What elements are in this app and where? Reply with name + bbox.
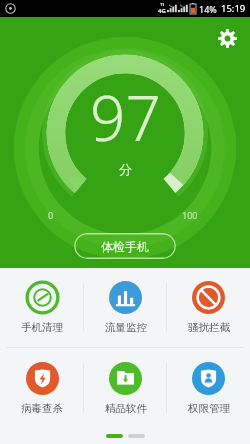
staticText: 分 — [119, 161, 132, 177]
button[interactable]: 流量监控 — [84, 268, 167, 347]
staticText: 权限管理 — [188, 402, 230, 415]
staticText: 15:19 — [221, 2, 246, 15]
button[interactable]: 权限管理 — [167, 348, 250, 428]
button[interactable]: 病毒查杀 — [0, 348, 84, 428]
staticText: 4G — [158, 7, 166, 15]
button[interactable]: 体检手机 — [74, 233, 176, 259]
staticText: 手机清理 — [21, 321, 63, 334]
button[interactable]: 骚扰拦截 — [167, 268, 250, 347]
button[interactable]: 手机清理 — [0, 268, 84, 347]
staticText: 流量监控 — [105, 321, 147, 334]
staticText: 骚扰拦截 — [188, 321, 230, 334]
staticText: 14% — [199, 3, 217, 15]
button[interactable]: Settings — [212, 23, 242, 53]
staticText: 0 — [48, 209, 54, 221]
staticText: 97 — [90, 75, 161, 159]
button[interactable]: 精品软件 — [84, 348, 167, 428]
staticText: 100 — [182, 209, 198, 221]
staticText: 病毒查杀 — [21, 402, 63, 415]
staticText: 精品软件 — [105, 402, 147, 415]
staticText: 11 — [160, 2, 165, 7]
staticText: 体检手机 — [101, 239, 149, 254]
